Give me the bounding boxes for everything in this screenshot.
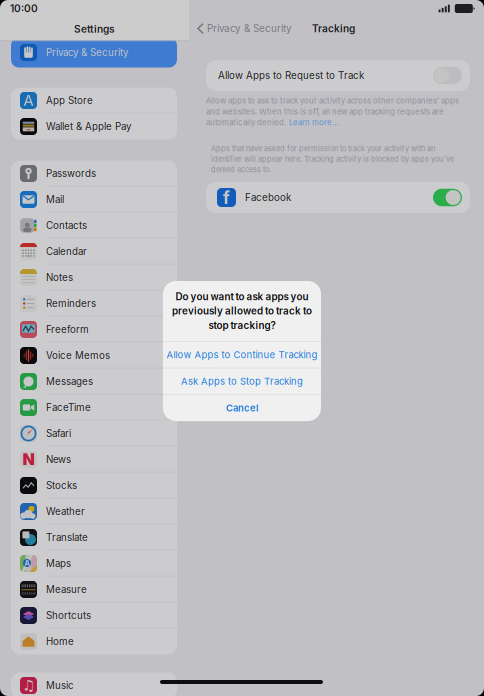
staticText: Do you want to ask apps you xyxy=(175,291,308,302)
staticText: Privacy & Security xyxy=(46,47,128,58)
staticText: Contacts xyxy=(46,220,87,231)
button[interactable]: Measure xyxy=(11,576,177,602)
button[interactable]: Freeform xyxy=(11,316,177,342)
staticText: Passwords xyxy=(46,168,96,179)
button[interactable]: FaceTime xyxy=(11,394,177,420)
staticText: denied access to. xyxy=(211,165,271,174)
button[interactable]: Privacy & Security xyxy=(11,37,177,67)
button[interactable]: Weather xyxy=(11,498,177,524)
staticText: Shortcuts xyxy=(46,610,91,621)
button[interactable]: Calendar xyxy=(11,238,177,264)
staticText: FaceTime xyxy=(46,402,91,413)
staticText: Wallet & Apple Pay xyxy=(46,121,131,132)
staticText: Maps xyxy=(46,558,71,569)
staticText: Stocks xyxy=(46,480,77,491)
staticText: Notes xyxy=(46,272,73,283)
staticText: News xyxy=(46,454,71,465)
button[interactable]: Allow Apps to Continue Tracking xyxy=(163,342,321,368)
staticText: ♫ xyxy=(22,677,35,694)
button[interactable]: Stocks xyxy=(11,472,177,498)
staticText: Allow Apps to Request to Track xyxy=(218,70,364,81)
staticText: Calendar xyxy=(46,246,87,257)
staticText: A xyxy=(24,559,29,567)
button[interactable]: Wallet & Apple Pay xyxy=(11,113,177,139)
button[interactable]: Home xyxy=(11,628,177,654)
staticText: Settings xyxy=(74,23,115,35)
staticText: Messages xyxy=(46,376,93,387)
staticText: Freeform xyxy=(46,324,89,335)
button[interactable]: Mail xyxy=(11,186,177,212)
staticText: Mail xyxy=(46,194,64,205)
staticText: A xyxy=(23,92,33,109)
button[interactable]: Privacy & Security xyxy=(189,0,292,43)
staticText: Translate xyxy=(46,532,88,543)
staticText: Reminders xyxy=(46,298,96,309)
staticText: Allow Apps to Continue Tracking xyxy=(166,349,317,360)
staticText: Weather xyxy=(46,506,85,517)
staticText: Tracking xyxy=(312,22,355,35)
staticText: Safari xyxy=(46,428,71,439)
staticText: Home xyxy=(46,636,74,647)
button[interactable]: f xyxy=(206,182,470,213)
staticText: Allow apps to ask to track your activity… xyxy=(206,96,459,105)
button[interactable]: Cancel xyxy=(163,395,321,421)
staticText: Music xyxy=(46,680,74,691)
staticText: Learn more… xyxy=(289,118,339,127)
staticText: Privacy & Security xyxy=(207,22,292,34)
staticText: previously allowed to track to xyxy=(172,305,312,317)
button[interactable]: Reminders xyxy=(11,290,177,316)
staticText: automatically denied. xyxy=(206,118,286,127)
button[interactable]: Learn more… xyxy=(289,118,339,127)
button[interactable]: A xyxy=(11,87,177,113)
staticText: Cancel xyxy=(226,402,258,414)
staticText: and websites. When this is off, all new … xyxy=(206,107,444,116)
staticText: N xyxy=(22,450,34,469)
staticText: stop tracking? xyxy=(208,319,275,331)
staticText: Voice Memos xyxy=(46,350,110,361)
staticText: App Store xyxy=(46,95,93,106)
staticText: identifier will appear here. Tracking ac… xyxy=(211,154,454,163)
staticText: Ask Apps to Stop Tracking xyxy=(181,376,303,387)
button[interactable]: Messages xyxy=(11,368,177,394)
button[interactable]: Voice Memos xyxy=(11,342,177,368)
button[interactable]: A xyxy=(11,550,177,576)
button[interactable]: Ask Apps to Stop Tracking xyxy=(163,368,321,394)
button[interactable]: Allow Apps to Request to Track xyxy=(206,60,470,91)
staticText: Facebook xyxy=(245,192,291,203)
button[interactable]: Contacts xyxy=(11,212,177,238)
button[interactable]: Passwords xyxy=(11,160,177,186)
button[interactable]: N xyxy=(11,446,177,472)
button[interactable]: Notes xyxy=(11,264,177,290)
staticText: Measure xyxy=(46,584,87,595)
staticText: Apps that have asked for permission to t… xyxy=(211,144,435,153)
button[interactable]: Shortcuts xyxy=(11,602,177,628)
button[interactable]: Translate xyxy=(11,524,177,550)
staticText: 10:00 xyxy=(10,2,38,15)
button[interactable]: Safari xyxy=(11,420,177,446)
button[interactable]: ♫ xyxy=(11,672,177,696)
staticText: f xyxy=(223,187,230,208)
